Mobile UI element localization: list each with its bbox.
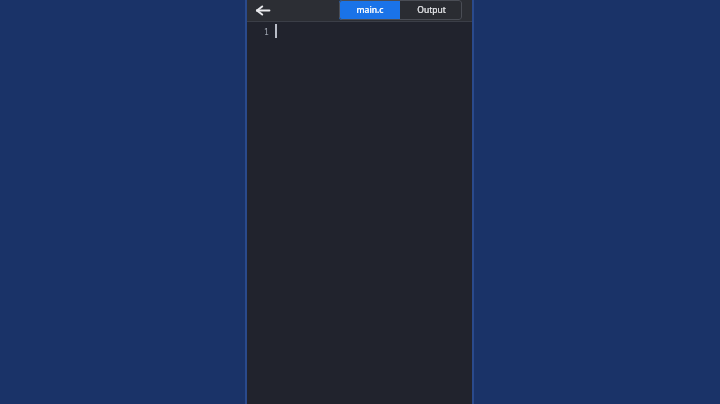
staticText: Output	[417, 4, 446, 16]
staticText: 1	[264, 26, 269, 37]
button[interactable]: Back	[249, 0, 275, 21]
button[interactable]: main.c	[339, 0, 400, 20]
button[interactable]: Code editor	[247, 22, 472, 404]
staticText: main.c	[356, 4, 384, 16]
button[interactable]: Output	[400, 0, 462, 20]
